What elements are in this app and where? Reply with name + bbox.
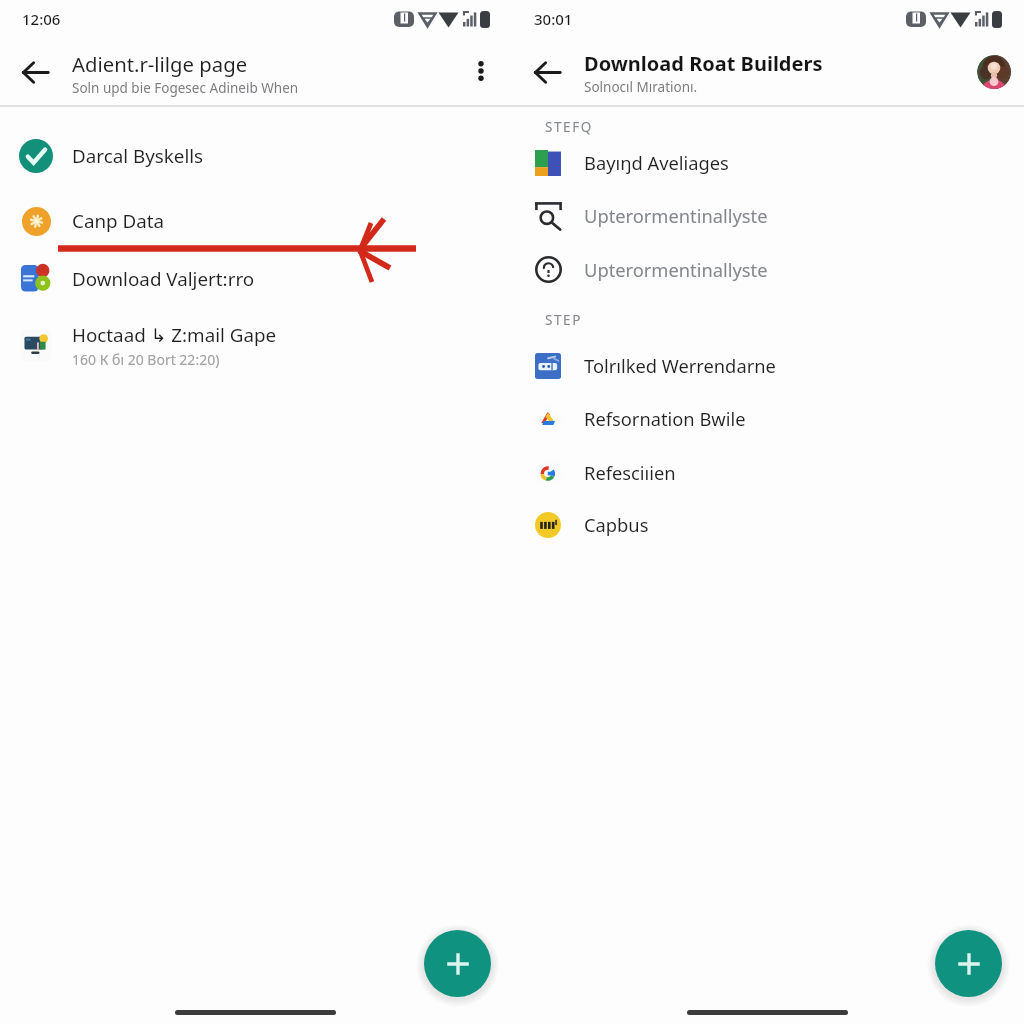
- staticText: 12:06: [22, 9, 61, 29]
- staticText: Hoctaad ↳ Z:mail Gaрe: [72, 322, 277, 348]
- staticText: Upterormentinallyste: [584, 203, 768, 228]
- staticText: 160 К бı 20 Bort 22:20): [72, 350, 220, 369]
- button[interactable]: Download Valjert:rro: [0, 252, 512, 306]
- staticText: Capbus: [584, 512, 649, 537]
- staticText: Refesciıien: [584, 460, 676, 485]
- button[interactable]: Add: [935, 930, 1002, 997]
- staticText: Soln upd bie Fogeseс Adineіb When: [72, 79, 299, 97]
- button[interactable]: Back: [14, 51, 56, 93]
- button[interactable]: Refsornation Bwile: [512, 392, 1024, 445]
- button[interactable]: Tolrılked Werrendarne: [512, 339, 1024, 392]
- staticText: Refsornation Bwile: [584, 406, 746, 431]
- staticText: STEP: [545, 311, 582, 329]
- staticText: Canp Data: [72, 208, 165, 234]
- staticText: Solnocıl Mırationı.: [584, 78, 698, 96]
- button[interactable]: Bayıŋd Aveliages: [512, 136, 1024, 189]
- staticText: Tolrılked Werrendarne: [584, 353, 776, 378]
- staticText: Darcal Byskells: [72, 143, 204, 169]
- staticText: Upterormentinallyste: [584, 257, 768, 282]
- button[interactable]: Hoctaad ↳ Z:mail Gaрe: [0, 314, 512, 376]
- button[interactable]: Account: [973, 51, 1015, 93]
- staticText: Download Valjert:rro: [72, 266, 255, 292]
- staticText: Adient.r-lilge page: [72, 50, 248, 78]
- button[interactable]: Canp Data: [0, 194, 512, 248]
- button[interactable]: Refesciıien: [512, 446, 1024, 499]
- button[interactable]: Capbus: [512, 498, 1024, 551]
- button[interactable]: Upterormentinallyste: [512, 243, 1024, 296]
- staticText: STEFQ: [545, 118, 593, 136]
- button[interactable]: Darcal Byskells: [0, 129, 512, 183]
- staticText: Download Roat Builders: [584, 50, 823, 77]
- staticText: Bayıŋd Aveliages: [584, 150, 729, 175]
- staticText: 30:01: [534, 9, 573, 29]
- button[interactable]: Add: [424, 930, 491, 997]
- button[interactable]: Back: [526, 51, 568, 93]
- button[interactable]: More options: [462, 52, 500, 90]
- button[interactable]: Upterormentinallyste: [512, 189, 1024, 242]
